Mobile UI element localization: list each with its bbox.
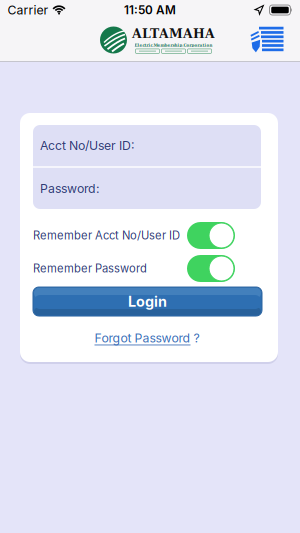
button[interactable]: Remember Password — [187, 255, 235, 282]
button[interactable]: Acct No/User ID — [33, 125, 261, 166]
staticText: Login — [128, 293, 167, 310]
staticText: 11:50 AM — [124, 3, 176, 17]
button[interactable]: Forgot Password — [94, 331, 199, 345]
button[interactable]: Password — [33, 168, 261, 209]
button[interactable]: Report an issue — [247, 23, 287, 57]
staticText: Acct No/User ID: — [40, 138, 135, 153]
staticText: Remember Password — [33, 262, 147, 275]
staticText: Password: — [40, 181, 100, 196]
staticText: Carrier — [7, 3, 48, 17]
staticText: ALTAMAHA — [132, 27, 215, 41]
staticText: Forgot Password — [94, 331, 190, 345]
button[interactable]: Remember Acct No/User ID — [187, 222, 235, 249]
staticText: ? — [193, 331, 199, 345]
staticText: Electric Membership Corporation — [134, 43, 212, 47]
staticText: Remember Acct No/User ID — [33, 229, 180, 242]
button[interactable]: Login — [33, 287, 262, 316]
